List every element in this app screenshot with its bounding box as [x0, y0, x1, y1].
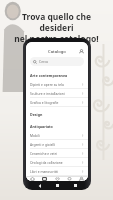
- staticText: Cerca: [39, 59, 48, 64]
- staticText: Design: [30, 112, 43, 117]
- button[interactable]: Ceramiche e vetri: [26, 149, 88, 157]
- button[interactable]: Cerca: [30, 57, 84, 66]
- staticText: Sculture e installazioni: [30, 91, 65, 95]
- button[interactable]: Back: [38, 184, 42, 188]
- button[interactable]: Notifiche: [64, 177, 75, 181]
- staticText: Grafica e litografie: [30, 100, 59, 104]
- staticText: Dipinti e opere su tela: [30, 82, 64, 86]
- button[interactable]: Orologi da collezione: [26, 158, 88, 166]
- button[interactable]: Mobili: [26, 131, 88, 139]
- button[interactable]: Dipinti e opere su tela: [26, 80, 88, 88]
- staticText: Libri e manoscritti: [30, 169, 58, 173]
- button[interactable]: Account: [78, 48, 85, 55]
- staticText: Mobili: [30, 133, 40, 137]
- button[interactable]: Preferiti: [52, 177, 63, 181]
- staticText: Trova quello che desideri nel nostro cat…: [8, 11, 105, 44]
- button[interactable]: Sculture e installazioni: [26, 89, 88, 97]
- button[interactable]: Argenti e gioielli: [26, 140, 88, 148]
- staticText: Antiquariato: [30, 124, 53, 129]
- staticText: Arte contemporanea: [30, 73, 68, 78]
- button[interactable]: Catalogo: [39, 177, 50, 181]
- staticText: Argenti e gioielli: [30, 142, 56, 146]
- button[interactable]: Home: [27, 177, 38, 181]
- staticText: Catalogo: [48, 49, 66, 55]
- button[interactable]: Profilo: [76, 177, 87, 181]
- button[interactable]: Grafica e litografie: [26, 98, 88, 106]
- staticText: Ceramiche e vetri: [30, 151, 58, 155]
- staticText: Orologi da collezione: [30, 160, 63, 164]
- button[interactable]: Libri e manoscritti: [26, 167, 88, 175]
